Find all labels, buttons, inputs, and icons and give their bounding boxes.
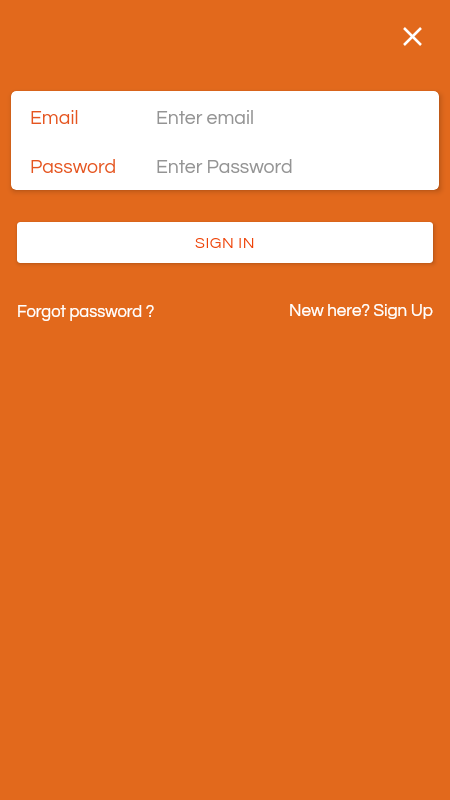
button[interactable]: Email [11, 93, 439, 143]
staticText: Email [30, 108, 156, 128]
button[interactable]: Close [393, 17, 431, 55]
button[interactable]: Forgot password ? [17, 303, 155, 320]
button[interactable]: Password [11, 143, 439, 190]
button[interactable]: SIGN IN [17, 222, 433, 263]
staticText: New here? Sign Up [289, 302, 433, 320]
staticText: Password [30, 157, 156, 177]
button[interactable]: New here? Sign Up [289, 302, 433, 320]
staticText: Forgot password ? [17, 303, 155, 320]
staticText: Enter Password [156, 157, 293, 177]
staticText: Enter email [156, 108, 254, 128]
staticText: SIGN IN [195, 235, 256, 251]
